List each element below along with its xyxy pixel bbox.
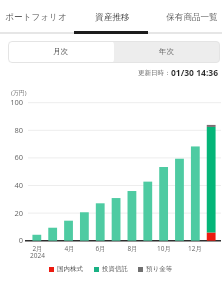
staticText: ポートフォリオ xyxy=(5,12,67,23)
staticText: 更新日時： xyxy=(138,69,171,77)
staticText: 01/30 14:36 xyxy=(171,67,219,79)
staticText: 資産推移 xyxy=(95,12,130,23)
staticText: 年次 xyxy=(159,47,175,57)
staticText: 12月 xyxy=(188,244,202,253)
button[interactable]: ポートフォリオ xyxy=(0,0,74,34)
button[interactable]: 保有商品一覧 xyxy=(148,0,222,34)
staticText: 投資信託 xyxy=(102,265,128,273)
staticText: 国内株式 xyxy=(57,265,83,273)
staticText: 6月 xyxy=(95,244,106,253)
staticText: 80 xyxy=(14,125,23,135)
button[interactable]: 月次 xyxy=(8,41,114,63)
staticText: 60 xyxy=(14,152,23,162)
staticText: 40 xyxy=(14,180,23,190)
staticText: 8月 xyxy=(127,244,138,253)
staticText: 月次 xyxy=(53,47,69,57)
button[interactable]: 資産推移 xyxy=(74,0,148,34)
staticText: 保有商品一覧 xyxy=(166,12,218,23)
staticText: 100 xyxy=(10,97,23,107)
staticText: 預り金等 xyxy=(146,265,173,273)
staticText: 10月 xyxy=(157,244,171,253)
staticText: 2月 xyxy=(32,244,43,253)
staticText: 0 xyxy=(18,235,23,245)
button[interactable]: 年次 xyxy=(114,41,220,63)
staticText: 2024 xyxy=(30,251,45,260)
staticText: 4月 xyxy=(64,244,75,253)
staticText: (万円) xyxy=(11,89,27,97)
staticText: 20 xyxy=(14,208,23,218)
